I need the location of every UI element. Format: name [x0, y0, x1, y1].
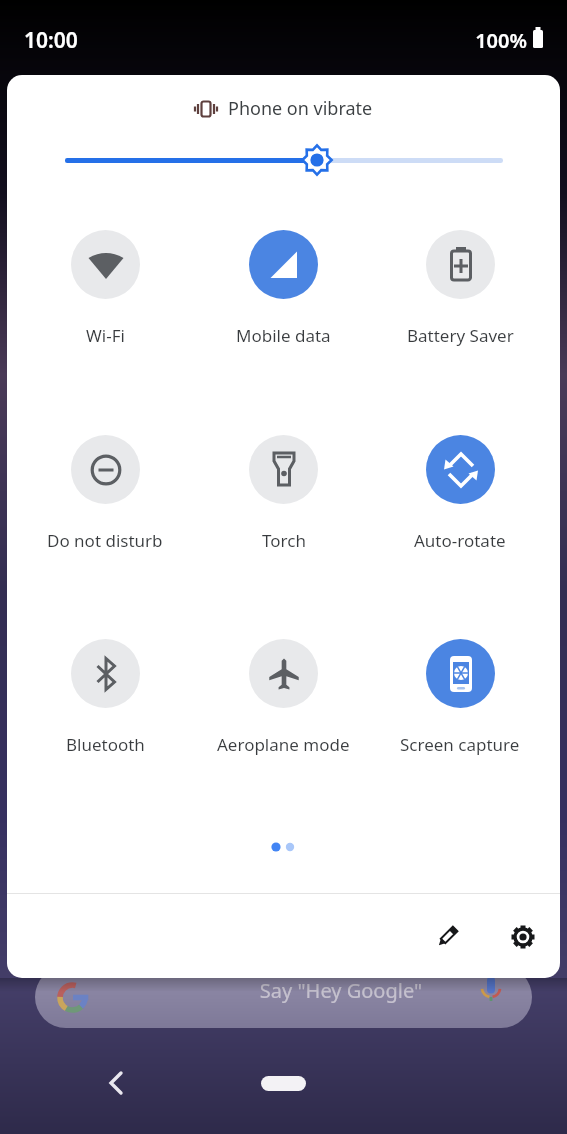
button[interactable]: Do not disturb	[17, 435, 193, 555]
staticText: 100%	[443, 27, 527, 1134]
button[interactable]	[507, 921, 539, 953]
button[interactable]	[477, 972, 505, 1006]
staticText: Do not disturb	[47, 529, 163, 552]
staticText: Battery Saver	[407, 324, 514, 347]
staticText: Torch	[262, 529, 306, 552]
button[interactable]: Bluetooth	[17, 639, 193, 759]
staticText: Aeroplane mode	[217, 733, 350, 756]
staticText: Auto-rotate	[414, 529, 506, 552]
button[interactable]: Screen capture	[372, 639, 548, 759]
button[interactable]: Phone on vibrate	[7, 95, 560, 121]
button[interactable]: Wi-Fi	[17, 230, 193, 350]
staticText: Say "Hey Google"	[241, 977, 441, 1134]
button[interactable]: Auto-rotate	[372, 435, 548, 555]
staticText: Mobile data	[236, 324, 331, 347]
button[interactable]: Battery Saver	[372, 230, 548, 350]
staticText: Wi-Fi	[86, 324, 125, 347]
button[interactable]: Aeroplane mode	[195, 639, 371, 759]
staticText: Screen capture	[400, 733, 520, 756]
button[interactable]	[100, 1068, 132, 1098]
button[interactable]: Mobile data	[195, 230, 371, 350]
button[interactable]	[35, 966, 532, 1028]
staticText: Phone on vibrate	[228, 96, 373, 121]
staticText: 10:00	[24, 26, 134, 1134]
button[interactable]	[431, 921, 463, 953]
button[interactable]: Torch	[195, 435, 371, 555]
staticText: Bluetooth	[66, 733, 145, 756]
button[interactable]	[261, 1076, 306, 1091]
